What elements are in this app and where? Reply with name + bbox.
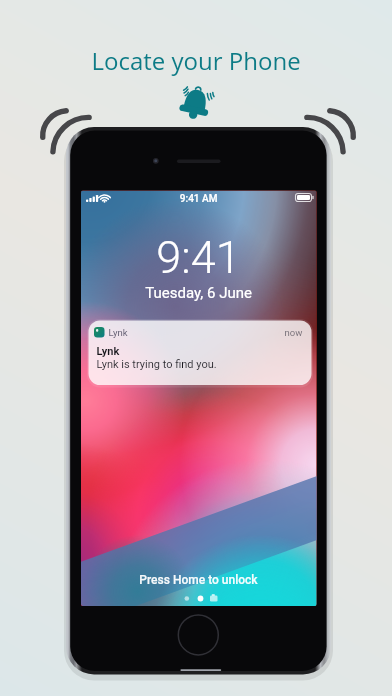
button[interactable] xyxy=(0,0,392,696)
